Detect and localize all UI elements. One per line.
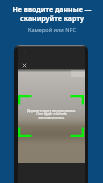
staticText: Не вводите данные — сканируйте карту xyxy=(12,5,92,23)
staticText: Камерой или NFC xyxy=(28,26,76,34)
button[interactable]: Закрыть xyxy=(19,60,29,70)
staticText: Держите карту внутри рамки. Она будет сч… xyxy=(18,108,85,120)
